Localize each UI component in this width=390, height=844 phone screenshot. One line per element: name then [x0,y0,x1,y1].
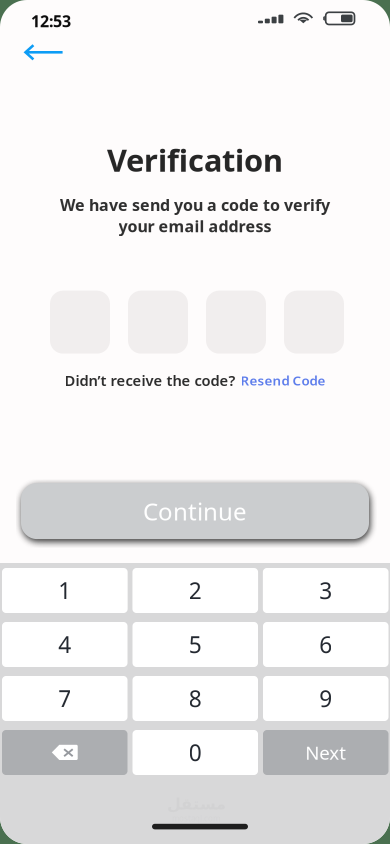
staticText: 6 [319,629,332,659]
button[interactable]: 0 [132,730,258,775]
button[interactable]: 2 [132,568,258,613]
button[interactable]: Delete [2,730,127,775]
staticText: 2 [189,575,202,605]
button[interactable]: 1 [2,568,128,613]
staticText: Didn’t receive the code? [64,371,235,390]
staticText: Verification [107,139,283,180]
staticText: We have send you a code to verify [60,194,330,215]
staticText: mostaql.com [172,813,220,824]
staticText: Next [305,740,346,765]
staticText: Continue [143,495,247,527]
staticText: 9 [319,683,332,713]
staticText: 1 [58,575,71,605]
button[interactable]: Back [15,38,72,69]
staticText: 7 [58,683,71,713]
staticText: 0 [189,737,202,767]
button[interactable]: 4 [2,622,127,667]
button[interactable]: Resend Code [240,371,325,389]
staticText: 5 [189,629,202,659]
button[interactable]: 3 [263,568,388,613]
button[interactable]: Continue [21,483,369,539]
staticText: 12:53 [31,10,71,32]
button[interactable]: 7 [2,676,127,721]
button[interactable]: 8 [132,676,258,721]
button[interactable]: 9 [263,676,388,721]
button[interactable]: 6 [263,622,388,667]
button[interactable]: 5 [132,622,258,667]
staticText: 3 [319,575,332,605]
staticText: 4 [58,629,71,659]
button[interactable]: Next [263,730,388,775]
staticText: your email address [118,215,271,237]
staticText: Resend Code [240,371,325,389]
staticText: 8 [189,683,202,713]
